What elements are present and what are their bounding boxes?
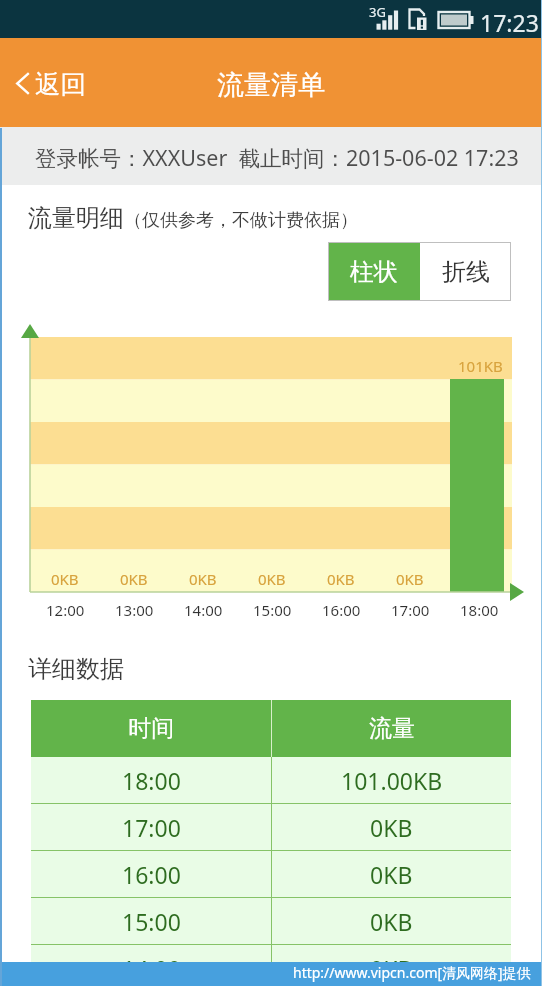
button[interactable]: 时间	[31, 700, 271, 757]
staticText: 0KB	[370, 953, 413, 984]
staticText: 0KB	[258, 569, 286, 589]
staticText: 0KB	[327, 569, 355, 589]
button[interactable]: 返回	[0, 55, 106, 111]
staticText: 0KB	[370, 812, 413, 843]
button[interactable]: 17:00	[31, 804, 511, 850]
staticText: 0KB	[51, 569, 79, 589]
staticText: 13:00	[115, 600, 154, 620]
button[interactable]: 流量	[272, 700, 511, 757]
staticText: 15:00	[253, 600, 292, 620]
staticText: 登录帐号：XXXUser 截止时间：2015-06-02 17:23	[35, 143, 519, 172]
staticText: 柱状	[350, 257, 398, 287]
staticText: 0KB	[120, 569, 148, 589]
staticText: http://www.vipcn.com[清风网络]提供	[293, 963, 531, 982]
staticText: 14:00	[122, 953, 181, 984]
staticText: （仅供参考，不做计费依据）	[124, 209, 358, 232]
staticText: 14:00	[184, 600, 223, 620]
staticText: 101.00KB	[341, 765, 443, 796]
staticText: 16:00	[122, 859, 181, 890]
button[interactable]: 折线	[420, 242, 511, 301]
staticText: 0KB	[370, 906, 413, 937]
staticText: 3G	[369, 3, 386, 21]
button[interactable]: 14:00	[31, 945, 511, 986]
button[interactable]: 柱状	[328, 242, 420, 301]
staticText: 折线	[442, 257, 490, 287]
staticText: 0KB	[189, 569, 217, 589]
staticText: 17:23	[480, 7, 539, 38]
staticText: 15:00	[122, 906, 181, 937]
button[interactable]: 15:00	[31, 898, 511, 944]
staticText: 0KB	[370, 859, 413, 890]
staticText: 详细数据	[28, 654, 124, 684]
staticText: 12:00	[46, 600, 85, 620]
staticText: 返回	[35, 68, 86, 100]
staticText: 0KB	[396, 569, 424, 589]
staticText: 18:00	[122, 765, 181, 796]
staticText: 流量清单	[217, 68, 325, 102]
button[interactable]: 16:00	[31, 851, 511, 897]
staticText: 流量	[369, 714, 415, 743]
button[interactable]: 18:00	[31, 757, 511, 803]
staticText: 流量明细	[28, 203, 124, 233]
staticText: 18:00	[460, 600, 499, 620]
staticText: 16:00	[322, 600, 361, 620]
staticText: 17:00	[122, 812, 181, 843]
staticText: 时间	[128, 714, 174, 743]
staticText: 17:00	[391, 600, 430, 620]
staticText: 101KB	[458, 356, 503, 376]
